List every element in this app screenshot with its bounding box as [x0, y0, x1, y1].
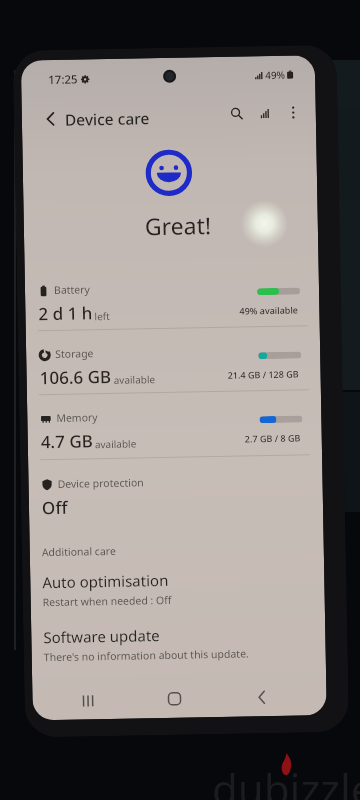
button[interactable]: Navigate up — [31, 101, 68, 137]
button[interactable]: Software update — [31, 622, 326, 664]
staticText: Device protection — [57, 475, 145, 491]
staticText: 2 d 1 h — [38, 301, 93, 325]
button[interactable]: Battery — [25, 274, 320, 331]
staticText: 4.7 GB — [41, 429, 93, 453]
staticText: Additional care — [42, 544, 116, 559]
staticText: Off — [42, 496, 68, 519]
staticText: available — [113, 372, 156, 387]
button[interactable]: Recent apps — [67, 681, 108, 720]
button[interactable]: Storage — [26, 338, 321, 395]
staticText: 21.4 GB / 128 GB — [227, 367, 300, 381]
button[interactable]: Home — [154, 679, 195, 718]
button[interactable]: Device protection — [28, 472, 323, 519]
staticText: Auto optimisation — [42, 570, 168, 592]
staticText: 2.7 GB / 8 GB — [245, 431, 301, 444]
staticText: Software update — [43, 625, 160, 647]
button[interactable]: Auto optimisation — [30, 567, 325, 609]
button[interactable]: More options — [278, 98, 307, 127]
staticText: available — [95, 436, 137, 451]
staticText: 106.6 GB — [39, 365, 112, 389]
staticText: left — [94, 309, 111, 323]
staticText: Storage — [55, 346, 94, 361]
staticText: There's no information about this update… — [44, 646, 250, 664]
staticText: 17:25 — [48, 71, 78, 88]
button[interactable]: Back — [241, 678, 282, 717]
button[interactable]: Search — [222, 99, 251, 128]
staticText: Battery — [54, 282, 90, 297]
button[interactable]: Memory — [27, 402, 322, 459]
staticText: Restart when needed : Off — [43, 593, 172, 609]
staticText: Great! — [145, 209, 212, 241]
staticText: dubizzle — [212, 760, 360, 800]
button[interactable]: Usage statistics — [250, 99, 279, 127]
staticText: Memory — [56, 410, 98, 425]
staticText: Device care — [65, 107, 150, 130]
staticText: 49% — [265, 68, 285, 82]
staticText: 49% available — [239, 303, 298, 317]
